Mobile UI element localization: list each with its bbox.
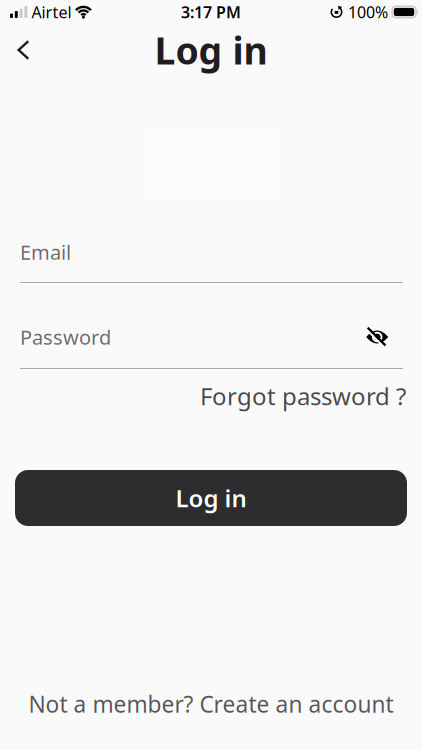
button[interactable]: Back [0,32,30,68]
staticText: Password [20,324,111,350]
button[interactable]: Forgot password ? [200,380,406,412]
staticText: 100% [348,1,388,23]
button[interactable]: Log in [15,470,407,526]
staticText: Email [20,239,71,265]
button[interactable]: Show password [366,327,389,347]
staticText: Forgot password ? [200,380,406,412]
staticText: Log in [154,25,267,75]
staticText: Not a member? Create an account [28,689,393,719]
button[interactable]: Not a member? Create an account [28,689,393,719]
staticText: Airtel [31,1,71,23]
staticText: 3:17 PM [181,1,241,23]
staticText: Log in [175,482,246,514]
